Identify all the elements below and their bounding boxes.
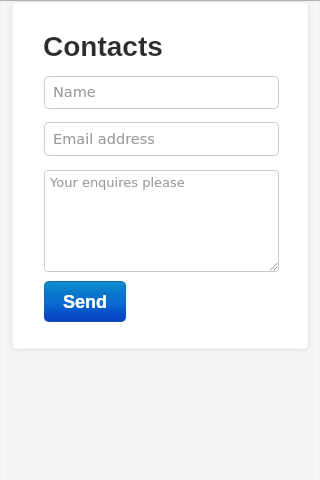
staticText: Name	[53, 84, 96, 101]
staticText: Email address	[53, 131, 155, 148]
staticText: Send	[63, 292, 108, 312]
staticText: Contacts	[43, 31, 163, 62]
button[interactable]: Name	[44, 76, 279, 109]
button[interactable]: Email address	[44, 122, 279, 156]
staticText: Your enquires please	[50, 175, 185, 190]
button[interactable]: Send	[44, 281, 126, 322]
button[interactable]: Your enquires please	[44, 170, 279, 272]
